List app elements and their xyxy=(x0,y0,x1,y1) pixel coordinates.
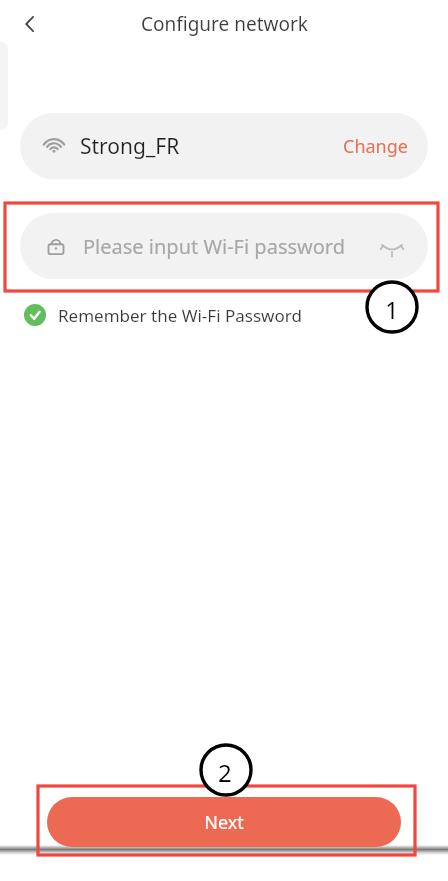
staticText: Remember the Wi-Fi Password xyxy=(58,304,302,327)
staticText: Please input Wi-Fi password xyxy=(83,233,346,260)
button[interactable]: Please input Wi-Fi password xyxy=(20,213,428,279)
staticText: Change xyxy=(343,134,408,159)
staticText: Next xyxy=(204,810,244,835)
button[interactable]: Remember the Wi-Fi Password xyxy=(24,298,302,332)
button[interactable]: Back xyxy=(8,2,52,46)
staticText: Strong_FR xyxy=(80,132,180,161)
button[interactable]: Show password xyxy=(372,226,412,266)
staticText: 1 xyxy=(385,293,399,326)
staticText: Configure network xyxy=(141,11,308,37)
staticText: 2 xyxy=(218,756,232,789)
button[interactable]: Next xyxy=(47,797,401,847)
button[interactable]: Strong_FR xyxy=(20,113,428,179)
button[interactable]: Change xyxy=(331,126,420,167)
